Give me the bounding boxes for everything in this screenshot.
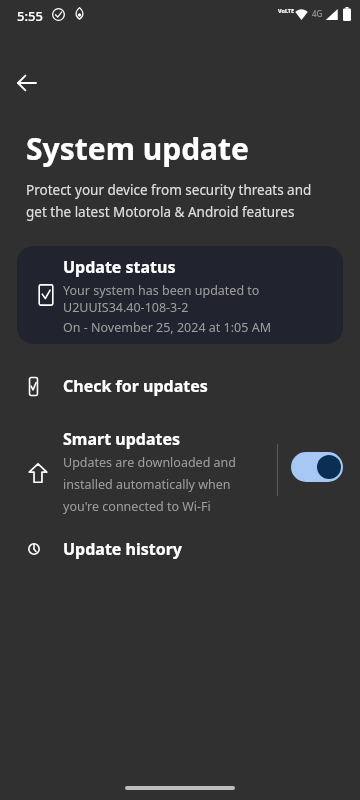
staticText: Your system has been updated to [63,282,260,299]
staticText: Protect your device from security threat… [26,181,324,221]
staticText: Update history [63,538,183,560]
button[interactable]: Check for updates [0,362,360,410]
staticText: Smart updates [63,428,180,450]
button[interactable]: Update status [17,246,343,344]
staticText: System update [26,128,250,169]
staticText: On - November 25, 2024 at 1:05 AM [63,319,271,336]
button[interactable]: Back [6,62,48,104]
staticText: U2UUIS34.40-108-3-2 [63,299,189,316]
staticText: VoLTE [278,7,295,14]
button[interactable]: Smart updates toggle [291,452,343,482]
staticText: 4G [312,8,323,19]
button[interactable]: Smart updates [0,418,360,528]
staticText: Update status [63,256,176,278]
button[interactable]: Update history [0,525,360,573]
staticText: Updates are downloaded and installed aut… [63,454,238,515]
staticText: 5:55 [17,7,43,25]
staticText: Check for updates [63,375,208,397]
